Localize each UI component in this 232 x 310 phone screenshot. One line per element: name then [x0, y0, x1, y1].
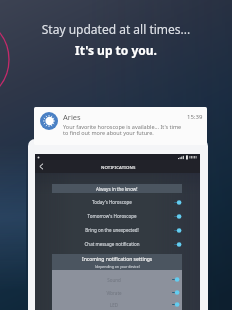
staticText: Aries	[63, 112, 81, 122]
button[interactable]: Aries	[34, 107, 207, 145]
staticText: Always in the know!	[96, 186, 138, 192]
staticText: Stay updated at all times...	[0, 21, 232, 37]
staticText: It's up to you.	[0, 42, 232, 58]
staticText: Vibrate	[58, 290, 170, 296]
staticText: (depending on your device)	[95, 264, 140, 269]
staticText: Bring on the unexpected!	[52, 227, 172, 233]
staticText: 15:39	[187, 113, 203, 121]
staticText: Chat message notification	[52, 241, 172, 247]
button[interactable]: Today's Horoscope	[52, 195, 182, 209]
button[interactable]: Tomorrow's Horoscope	[52, 209, 182, 223]
staticText: NOTIFICATIONS	[101, 164, 136, 170]
staticText: Incoming notification settings	[82, 256, 153, 263]
button[interactable]: Always in the know!	[52, 184, 182, 193]
button[interactable]: Vibrate	[58, 286, 180, 299]
button[interactable]: Back	[37, 162, 46, 171]
button[interactable]: Sound	[58, 273, 180, 286]
staticText: Tomorrow's Horoscope	[52, 213, 172, 219]
staticText: Your favorite horoscope is available... …	[63, 123, 185, 137]
button[interactable]: LED	[58, 299, 180, 310]
staticText: Today's Horoscope	[52, 199, 172, 205]
button[interactable]: Bring on the unexpected!	[52, 223, 182, 237]
button[interactable]: Chat message notification	[52, 237, 182, 251]
